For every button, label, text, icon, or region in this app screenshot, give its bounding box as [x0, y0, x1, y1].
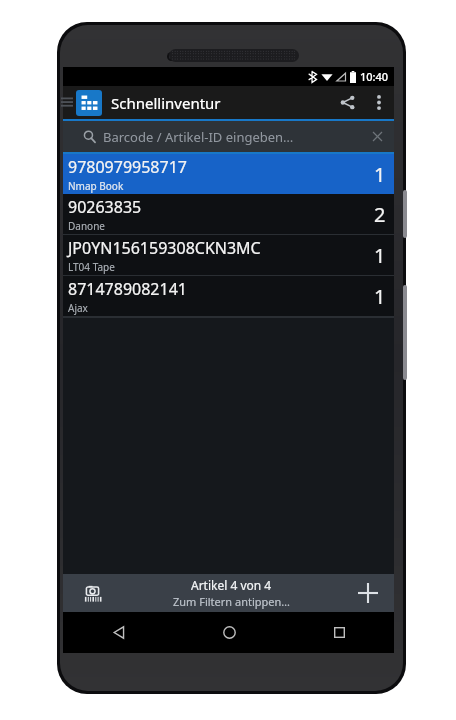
staticText: 10:40 — [360, 69, 389, 84]
staticText: 1 — [374, 283, 386, 310]
staticText: Schnellinventur — [111, 93, 221, 113]
staticText: 2 — [374, 201, 386, 228]
button[interactable]: Artikel 4 von 4 — [121, 577, 342, 609]
button[interactable]: 9780979958717 — [63, 154, 394, 194]
button[interactable]: Clear — [364, 121, 390, 152]
button[interactable]: More options — [364, 86, 394, 119]
staticText: Ajax — [68, 301, 88, 315]
button[interactable]: Recent apps — [284, 612, 394, 653]
staticText: 8714789082141 — [68, 278, 187, 300]
staticText: Artikel 4 von 4 — [191, 577, 272, 593]
button[interactable]: 8714789082141 — [63, 276, 394, 316]
button[interactable]: Share — [330, 86, 364, 119]
staticText: Barcode / Artikel-ID eingeben… — [103, 128, 294, 146]
button[interactable]: 90263835 — [63, 194, 394, 234]
staticText: 90263835 — [68, 196, 142, 218]
button[interactable]: Scan barcode — [63, 574, 121, 612]
button[interactable]: Add item — [342, 574, 394, 612]
staticText: Nmap Book — [68, 179, 124, 193]
staticText: 1 — [374, 161, 386, 188]
button[interactable]: Back — [63, 612, 174, 653]
staticText: 1 — [374, 242, 386, 269]
staticText: LT04 Tape — [68, 260, 115, 274]
button[interactable]: JP0YN156159308CKN3MC — [63, 235, 394, 275]
staticText: 9780979958717 — [68, 156, 187, 178]
button[interactable]: Navigation drawer — [63, 86, 73, 119]
staticText: Zum Filtern antippen… — [173, 594, 291, 609]
staticText: Danone — [68, 219, 105, 233]
staticText: JP0YN156159308CKN3MC — [68, 237, 261, 259]
button[interactable]: Barcode / Artikel-ID eingeben… — [63, 121, 394, 152]
button[interactable]: Home — [174, 612, 284, 653]
